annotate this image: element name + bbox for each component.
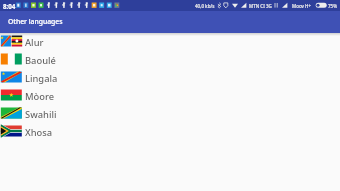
staticText: 40,0 kb/s <box>195 3 215 9</box>
staticText: Lingala <box>25 72 58 85</box>
staticText: Xhosa <box>25 126 53 139</box>
staticText: Baoulé <box>25 54 56 67</box>
button[interactable]: Swahili <box>0 104 340 122</box>
button[interactable]: Other languages <box>0 11 340 33</box>
button[interactable]: Xhosa <box>0 122 340 140</box>
staticText: Alur <box>25 36 44 49</box>
staticText: 75% <box>328 3 337 9</box>
staticText: Swahili <box>25 108 57 121</box>
staticText: Other languages <box>8 17 63 26</box>
staticText: Mòore <box>25 90 55 103</box>
staticText: MTN CI 3G <box>249 3 272 9</box>
staticText: 8:04 <box>3 2 16 10</box>
staticText: Moov H+ <box>292 3 312 9</box>
button[interactable]: Mòore <box>0 86 340 104</box>
button[interactable]: Lingala <box>0 68 340 86</box>
button[interactable]: Alur <box>0 32 340 50</box>
button[interactable]: Baoulé <box>0 50 340 68</box>
